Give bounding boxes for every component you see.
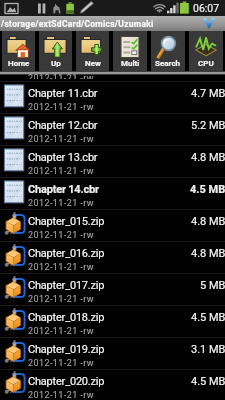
staticText: 2012-11-21 -rw [28,198,94,209]
staticText: 2012-11-21 -rw [28,134,94,145]
button[interactable]: CPU [189,31,223,71]
button[interactable]: Chapter 13.cbr [0,145,225,177]
staticText: Search [155,59,181,68]
staticText: Chapter_020.zip [28,375,105,388]
staticText: 5.2 MB [191,119,225,132]
staticText: CPU [198,59,214,68]
button[interactable]: Chapter_016.zip [0,241,225,273]
staticText: Chapter_016.zip [28,247,105,260]
staticText: Chapter_015.zip [28,215,105,228]
button[interactable]: /storage/extSdCard/Comics/Uzumaki [0,16,225,31]
staticText: 4.8 MB [191,151,225,164]
staticText: Home [8,59,30,68]
staticText: Chapter 14.cbr [28,183,99,196]
button[interactable]: Chapter 14.cbr [0,177,225,209]
button[interactable]: Chapter 12.cbr [0,113,225,145]
button[interactable]: Chapter_015.zip [0,209,225,241]
staticText: Chapter_019.zip [28,343,105,356]
staticText: 2012-11-21 -rw [28,230,94,241]
staticText: Chapter 12.cbr [28,119,98,132]
staticText: 4.5 MB [191,311,225,324]
staticText: Chapter_017.zip [28,279,105,292]
button[interactable]: Search [151,31,185,71]
staticText: 5 MB [200,279,225,292]
button[interactable]: Chapter_019.zip [0,337,225,369]
staticText: Chapter_018.zip [28,311,105,324]
button[interactable]: Home [2,31,35,71]
button[interactable]: Up [39,31,72,71]
staticText: /storage/extSdCard/Comics/Uzumaki [1,19,154,29]
staticText: 4.8 MB [191,247,225,260]
button[interactable]: New [76,31,109,71]
staticText: 2012-11-21 -rw [28,73,94,79]
staticText: 2012-11-21 -rw [28,326,94,337]
staticText: 2012-11-21 -rw [28,390,94,400]
staticText: Chapter 13.cbr [28,151,98,164]
staticText: 2012-11-21 -rw [28,166,94,177]
button[interactable]: Multi [113,31,147,71]
staticText: Up [51,59,61,68]
staticText: 2012-11-21 -rw [28,102,94,113]
staticText: New [85,59,101,68]
button[interactable]: Chapter 11.cbr [0,81,225,113]
button[interactable]: Chapter_017.zip [0,273,225,305]
button[interactable]: Chapter_018.zip [0,305,225,337]
staticText: 4.5 MB [191,375,225,388]
staticText: 2012-11-21 -rw [28,294,94,305]
staticText: Multi [121,59,140,68]
staticText: 3.1 MB [191,343,225,356]
staticText: 2012-11-21 -rw [28,358,94,369]
staticText: 06:07 [193,2,220,14]
staticText: 2012-11-21 -rw [28,262,94,273]
staticText: 4.7 MB [191,87,225,100]
other: Path history [202,18,216,29]
staticText: 4.8 MB [191,215,225,228]
button[interactable]: Chapter_020.zip [0,369,225,400]
staticText: Chapter 11.cbr [28,87,98,100]
staticText: 4.5 MB [190,183,225,196]
